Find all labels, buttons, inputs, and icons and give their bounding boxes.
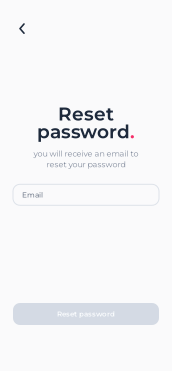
button[interactable]: Back <box>10 17 34 41</box>
staticText: reset your password <box>46 159 125 169</box>
staticText: you will receive an email to <box>33 149 138 159</box>
staticText: . <box>130 120 135 143</box>
staticText: Email <box>22 190 43 199</box>
staticText: password <box>37 120 130 143</box>
button[interactable]: Reset password <box>13 303 159 325</box>
staticText: Reset password <box>57 310 115 318</box>
staticText: Reset <box>58 103 114 125</box>
